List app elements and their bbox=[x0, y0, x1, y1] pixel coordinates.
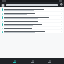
button[interactable] bbox=[1, 20, 63, 22]
button[interactable] bbox=[1, 30, 63, 33]
button[interactable]: Search bbox=[60, 3, 63, 6]
button[interactable]: Menu bbox=[1, 3, 5, 7]
button[interactable] bbox=[1, 27, 63, 29]
button[interactable] bbox=[1, 23, 63, 26]
button[interactable]: Home bbox=[12, 59, 17, 64]
button[interactable] bbox=[1, 16, 63, 19]
button[interactable] bbox=[1, 8, 63, 11]
button[interactable] bbox=[1, 12, 63, 15]
button[interactable]: Profile bbox=[47, 59, 52, 64]
button[interactable]: Library bbox=[30, 59, 35, 64]
